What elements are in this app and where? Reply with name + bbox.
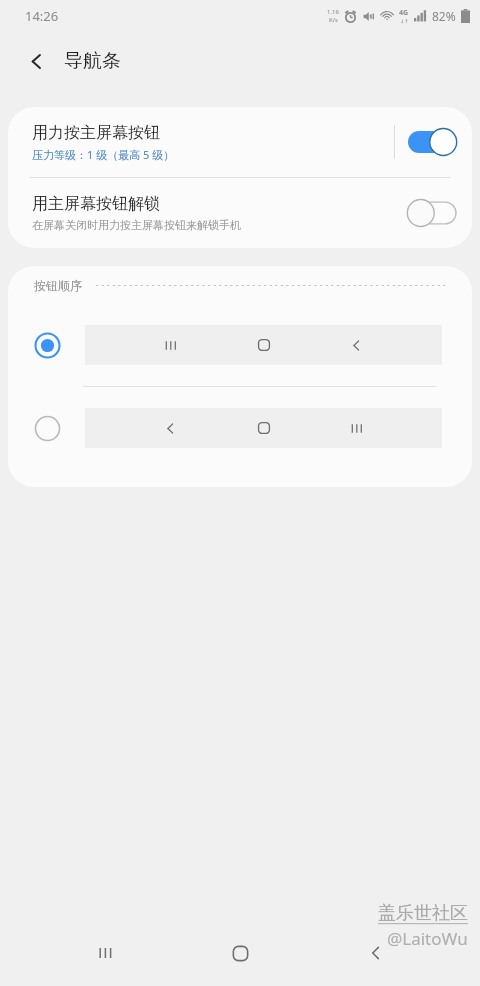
button[interactable] <box>8 387 472 469</box>
staticText: 压力等级：1 级（最高 5 级） <box>32 147 175 162</box>
staticText: 在屏幕关闭时用力按主屏幕按钮来解锁手机 <box>32 218 241 232</box>
staticText: 按钮顺序 <box>34 278 82 293</box>
button[interactable] <box>8 304 472 386</box>
staticText: 导航条 <box>64 49 121 73</box>
staticText: 盖乐世社区 <box>378 902 468 925</box>
staticText: ↓↑ <box>400 18 409 24</box>
button[interactable]: 用力按主屏幕按钮开关 <box>408 128 456 156</box>
button[interactable]: 返回 <box>12 37 60 85</box>
staticText: 4G <box>399 8 409 18</box>
button[interactable]: 用主屏幕按钮解锁开关 <box>408 199 456 227</box>
staticText: K/s <box>329 16 338 24</box>
button[interactable]: 用主屏幕按钮解锁 <box>8 178 472 248</box>
staticText: @LaitoWu <box>387 927 468 950</box>
staticText: 14:26 <box>25 7 59 25</box>
staticText: 用主屏幕按钮解锁 <box>32 194 160 214</box>
staticText: 用力按主屏幕按钮 <box>32 123 160 143</box>
staticText: 82% <box>432 8 456 24</box>
staticText: 1.16 <box>327 8 339 16</box>
button[interactable]: 主屏幕 <box>209 922 271 984</box>
button[interactable]: 最近任务 <box>74 922 136 984</box>
button[interactable]: 返回 <box>345 922 407 984</box>
button[interactable]: 用力按主屏幕按钮 <box>8 107 472 177</box>
